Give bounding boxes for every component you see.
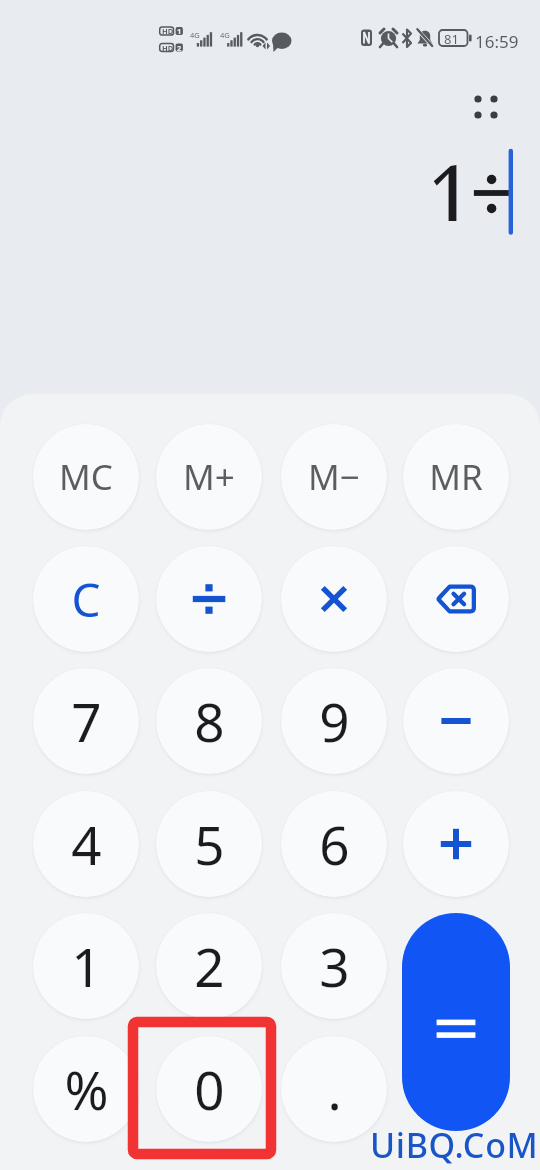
staticText: 1 xyxy=(71,930,102,1002)
button[interactable]: Minus xyxy=(403,668,509,774)
staticText: M+ xyxy=(183,453,235,501)
staticText: 1 xyxy=(177,26,182,36)
staticText: 4 xyxy=(71,808,102,880)
staticText: 2 xyxy=(177,43,182,53)
button[interactable]: 1 xyxy=(33,913,139,1019)
button[interactable]: 9 xyxy=(281,668,387,774)
button[interactable]: Multiply xyxy=(281,546,387,652)
staticText: C xyxy=(71,568,101,631)
button[interactable]: M− xyxy=(281,424,387,530)
staticText: UiBQ.CoM xyxy=(370,1122,539,1168)
button[interactable]: More options xyxy=(464,85,508,129)
staticText: 4G xyxy=(220,30,230,40)
staticText: 0 xyxy=(194,1053,225,1125)
button[interactable]: 0 xyxy=(156,1036,262,1142)
button[interactable]: 8 xyxy=(156,668,262,774)
button[interactable]: MR xyxy=(403,424,509,530)
button[interactable]: 2 xyxy=(156,913,262,1019)
button[interactable]: % xyxy=(33,1036,139,1142)
button[interactable]: Divide xyxy=(156,546,262,652)
button[interactable]: 7 xyxy=(33,668,139,774)
staticText: 8 xyxy=(194,685,225,757)
button[interactable]: 4 xyxy=(33,791,139,897)
staticText: 6 xyxy=(319,808,350,880)
staticText: 3 xyxy=(319,930,350,1002)
button[interactable]: 5 xyxy=(156,791,262,897)
button[interactable]: Equals xyxy=(402,913,510,1131)
staticText: UiBQ.CoM xyxy=(368,1122,537,1168)
button[interactable]: C xyxy=(33,546,139,652)
staticText: MR xyxy=(429,453,483,501)
button[interactable]: Delete xyxy=(403,546,509,652)
staticText: HD xyxy=(162,26,174,36)
button[interactable]: . xyxy=(281,1036,387,1142)
staticText: 4G xyxy=(190,30,200,40)
staticText: 81 xyxy=(444,30,459,48)
staticText: 7 xyxy=(71,685,102,757)
button[interactable]: 3 xyxy=(281,913,387,1019)
staticText: M− xyxy=(308,453,360,501)
staticText: 5 xyxy=(194,808,225,880)
staticText: 2 xyxy=(194,930,225,1002)
staticText: . xyxy=(327,1053,342,1125)
staticText: MC xyxy=(59,453,113,501)
button[interactable]: MC xyxy=(33,424,139,530)
staticText: % xyxy=(64,1053,109,1125)
staticText: 16:59 xyxy=(475,30,519,53)
button[interactable]: 6 xyxy=(281,791,387,897)
staticText: 9 xyxy=(319,685,350,757)
button[interactable]: M+ xyxy=(156,424,262,530)
staticText: HD xyxy=(162,43,174,53)
button[interactable]: Plus xyxy=(403,791,509,897)
